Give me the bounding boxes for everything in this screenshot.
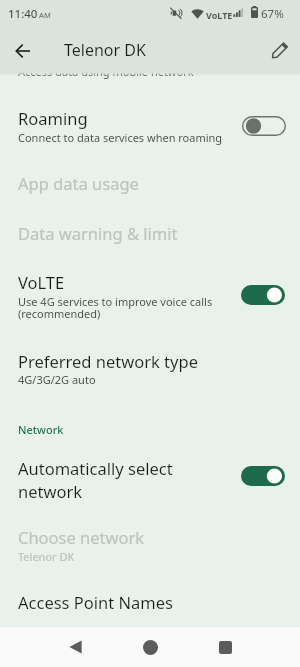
staticText: Choose network (18, 526, 145, 548)
staticText: VoLTE (18, 271, 65, 293)
staticText: Access Point Names (18, 591, 173, 613)
button[interactable] (0, 580, 300, 627)
button[interactable]: Automatically select network (241, 466, 285, 486)
button[interactable] (0, 265, 300, 340)
button[interactable]: Edit (262, 32, 298, 68)
staticText: Access data using mobile network (18, 64, 194, 79)
button[interactable]: Back (55, 634, 95, 660)
button[interactable]: Roaming (242, 116, 286, 136)
staticText: Telenor DK (64, 39, 146, 61)
button[interactable] (0, 160, 300, 210)
staticText: VoLTE (206, 9, 233, 21)
staticText: 67% (261, 6, 284, 22)
staticText: Connect to data services when roaming (18, 130, 223, 145)
staticText: 4G/3G/2G auto (18, 372, 96, 387)
button[interactable]: Navigate up (5, 33, 41, 69)
button[interactable] (0, 515, 300, 575)
button[interactable]: Home (130, 634, 170, 660)
button[interactable]: Recent apps (205, 634, 245, 660)
button[interactable] (0, 100, 300, 160)
staticText: AM (39, 10, 51, 20)
button[interactable] (0, 445, 300, 515)
staticText: Automatically select network (18, 457, 178, 503)
staticText: Use 4G services to improve voice calls (… (18, 294, 230, 321)
button[interactable] (0, 210, 300, 265)
staticText: Preferred network type (18, 350, 198, 372)
staticText: Roaming (18, 107, 88, 129)
staticText: 11:40 (8, 6, 38, 22)
button[interactable] (0, 80, 300, 180)
staticText: Data warning & limit (18, 222, 178, 244)
button[interactable] (0, 340, 300, 400)
staticText: Telenor DK (18, 549, 75, 564)
staticText: Network (18, 422, 64, 437)
staticText: App data usage (18, 172, 139, 194)
button[interactable]: VoLTE (241, 285, 285, 305)
